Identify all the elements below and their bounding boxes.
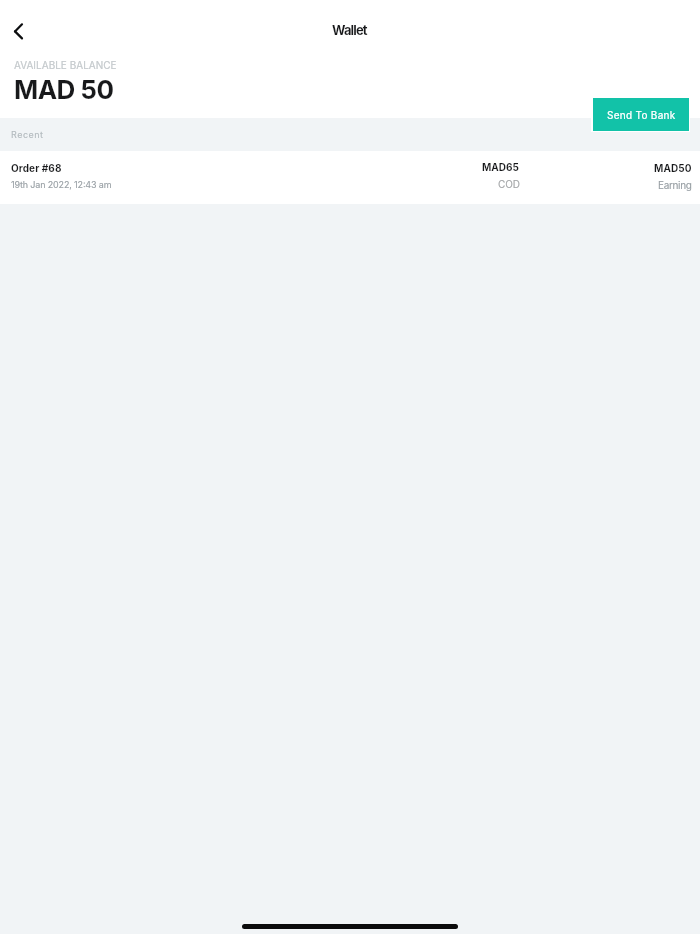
- staticText: Earning: [658, 179, 692, 191]
- staticText: AVAILABLE BALANCE: [14, 59, 117, 71]
- staticText: Order #68: [11, 162, 62, 174]
- staticText: MAD65: [482, 161, 520, 173]
- staticText: Recent: [11, 129, 44, 140]
- staticText: MAD 50: [14, 74, 114, 105]
- staticText: COD: [498, 178, 520, 190]
- staticText: Send To Bank: [607, 109, 676, 121]
- button[interactable]: Back: [0, 13, 36, 49]
- button[interactable]: Send To Bank: [593, 98, 689, 131]
- staticText: Wallet: [332, 22, 367, 38]
- staticText: 19th Jan 2022, 12:43 am: [11, 179, 112, 190]
- staticText: MAD50: [654, 162, 692, 174]
- button[interactable]: Order #68: [0, 151, 700, 204]
